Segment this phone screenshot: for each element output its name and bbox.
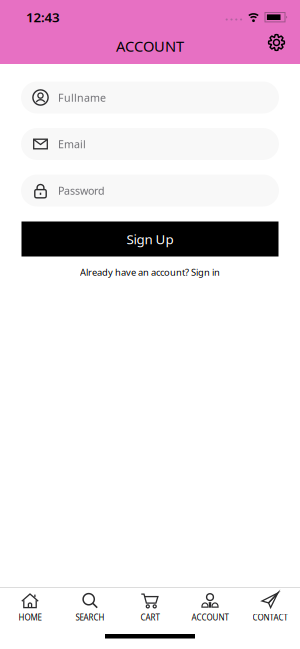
staticText: CONTACT	[252, 612, 287, 623]
button[interactable]: CART	[120, 592, 180, 623]
button[interactable]: Sign Up	[21, 221, 278, 256]
staticText: 12:43	[26, 8, 60, 26]
staticText: Sign Up	[126, 230, 173, 248]
staticText: ACCOUNT	[191, 612, 228, 623]
staticText: Password	[58, 183, 105, 198]
button[interactable]: Password	[21, 174, 279, 206]
staticText: HOME	[18, 612, 41, 623]
button[interactable]: ACCOUNT	[180, 592, 240, 623]
staticText: Already have an account? Sign in	[80, 266, 220, 278]
staticText: SEARCH	[75, 612, 104, 623]
button[interactable]: Email	[21, 128, 279, 160]
button[interactable]: CONTACT	[240, 592, 300, 623]
staticText: ACCOUNT	[116, 36, 184, 56]
staticText: Email	[58, 137, 86, 151]
staticText: CART	[140, 612, 159, 623]
button[interactable]: Fullname	[21, 81, 279, 113]
button[interactable]: HOME	[0, 592, 60, 623]
button[interactable]: SEARCH	[60, 592, 120, 623]
staticText: Fullname	[58, 90, 106, 105]
button[interactable]: Already have an account? Sign in	[80, 266, 220, 278]
button[interactable]	[268, 34, 285, 51]
